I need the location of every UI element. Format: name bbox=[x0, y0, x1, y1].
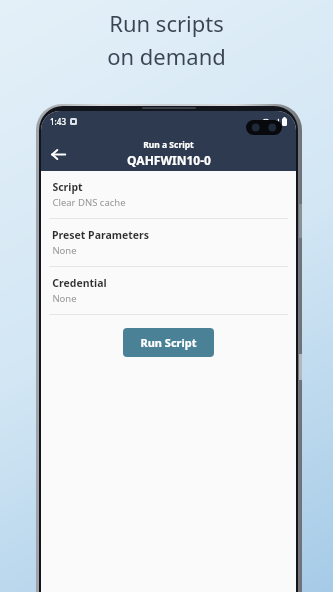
button[interactable]: Preset Parameters bbox=[41, 219, 296, 266]
staticText: Run Script bbox=[140, 335, 197, 350]
staticText: Script bbox=[52, 180, 83, 194]
button[interactable]: Script bbox=[41, 171, 296, 218]
staticText: None bbox=[52, 292, 77, 305]
staticText: QAHFWIN10-0 bbox=[127, 152, 211, 168]
staticText: Run a Script bbox=[143, 139, 194, 151]
staticText: Preset Parameters bbox=[52, 228, 149, 242]
staticText: 1:43 bbox=[50, 116, 66, 127]
staticText: Credential bbox=[52, 276, 107, 290]
staticText: None bbox=[52, 244, 77, 257]
staticText: Clear DNS cache bbox=[52, 196, 126, 209]
staticText: on demand bbox=[107, 41, 226, 71]
staticText: Run scripts bbox=[109, 8, 224, 38]
button[interactable]: Credential bbox=[41, 267, 296, 314]
button[interactable]: Back bbox=[45, 141, 71, 167]
button[interactable]: Run Script bbox=[123, 328, 214, 357]
